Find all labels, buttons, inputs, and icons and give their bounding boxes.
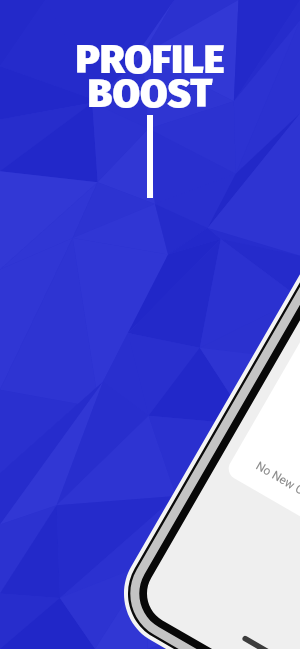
staticText: PROFILE BOOST xyxy=(75,36,225,118)
